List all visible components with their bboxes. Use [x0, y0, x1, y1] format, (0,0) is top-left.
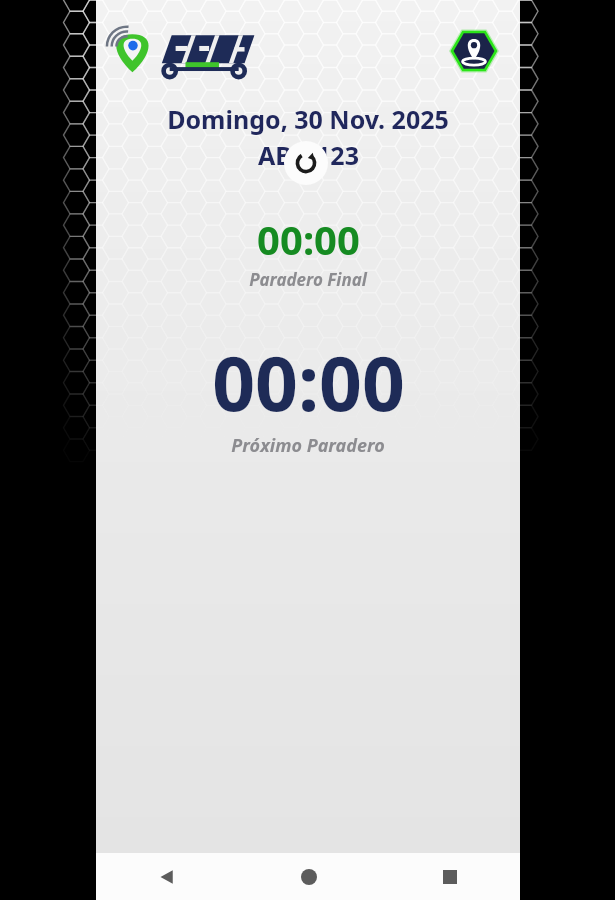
staticText: 00:00: [212, 331, 405, 433]
button[interactable]: Home: [238, 853, 379, 900]
staticText: 00:00: [257, 212, 360, 266]
button[interactable]: Recents: [379, 853, 520, 900]
staticText: Próximo Paradero: [231, 433, 385, 458]
staticText: Domingo, 30 Nov. 2025: [167, 102, 449, 136]
button[interactable]: Back: [96, 853, 238, 900]
button[interactable]: ECSA App: [110, 22, 270, 80]
button[interactable]: Actualizar: [284, 141, 328, 185]
staticText: ABC-123: [258, 138, 359, 172]
button[interactable]: Ubicación: [446, 23, 502, 79]
staticText: Paradero Final: [249, 268, 367, 291]
